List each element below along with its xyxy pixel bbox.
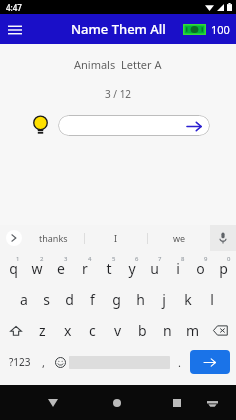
staticText: 9	[204, 255, 208, 263]
staticText: d	[65, 290, 74, 309]
staticText: 6	[135, 255, 139, 263]
button[interactable]: Coins	[183, 22, 230, 37]
button[interactable]: e	[49, 253, 73, 284]
button[interactable]: Home	[104, 390, 130, 416]
button[interactable]: j	[152, 284, 176, 315]
button[interactable]: k	[176, 284, 200, 315]
button[interactable]: n	[155, 315, 180, 346]
staticText: 0	[227, 255, 231, 263]
staticText: 1	[16, 255, 20, 263]
button[interactable]: d	[58, 284, 81, 315]
staticText: s	[43, 290, 50, 309]
staticText: y	[128, 259, 136, 278]
staticText: k	[184, 290, 192, 309]
button[interactable]: r	[73, 253, 97, 284]
staticText: 2	[40, 255, 44, 263]
button[interactable]: Submit answer	[58, 115, 210, 136]
staticText: Name Them All	[71, 20, 166, 38]
staticText: 8	[181, 255, 185, 263]
staticText: 4	[88, 255, 92, 263]
button[interactable]: y	[120, 253, 143, 284]
button[interactable]: Hint	[28, 113, 52, 137]
staticText: l	[210, 290, 214, 309]
button[interactable]: t	[97, 253, 120, 284]
staticText: i	[176, 259, 180, 278]
button[interactable]: Shift	[1, 315, 30, 346]
button[interactable]: g	[104, 284, 128, 315]
staticText: w	[31, 259, 43, 278]
button[interactable]: Emoji	[51, 347, 69, 377]
button[interactable]: x	[55, 315, 80, 346]
staticText: e	[57, 259, 65, 278]
button[interactable]: z	[30, 315, 55, 346]
button[interactable]: a	[12, 284, 35, 315]
staticText: q	[9, 259, 18, 278]
button[interactable]: h	[128, 284, 152, 315]
staticText: ?123	[9, 355, 31, 369]
button[interactable]: Enter	[190, 350, 230, 374]
staticText: c	[89, 321, 96, 340]
button[interactable]: Voice input	[210, 225, 236, 251]
staticText: g	[112, 290, 121, 309]
button[interactable]: Recent apps	[164, 390, 190, 416]
button[interactable]: c	[80, 315, 105, 346]
staticText: r	[82, 259, 88, 278]
button[interactable]: ,	[35, 347, 51, 377]
staticText: we	[173, 232, 186, 244]
button[interactable]: ?123	[4, 347, 35, 377]
staticText: 3	[64, 255, 68, 263]
button[interactable]: v	[105, 315, 130, 346]
staticText: f	[90, 290, 95, 309]
staticText: b	[138, 321, 147, 340]
staticText: u	[150, 259, 159, 278]
button[interactable]: w	[25, 253, 49, 284]
staticText: n	[163, 321, 172, 340]
button[interactable]: m	[180, 315, 205, 346]
button[interactable]: we	[148, 225, 210, 251]
staticText: j	[162, 290, 166, 309]
button[interactable]: o	[189, 253, 212, 284]
button[interactable]: b	[130, 315, 155, 346]
button[interactable]: I	[85, 225, 147, 251]
button[interactable]: p	[212, 253, 235, 284]
button[interactable]: Submit answer	[186, 118, 202, 134]
staticText: m	[186, 321, 200, 340]
button[interactable]: Back	[40, 390, 66, 416]
button[interactable]: u	[143, 253, 166, 284]
staticText: h	[136, 290, 145, 309]
staticText: z	[39, 321, 46, 340]
staticText: Animals Letter A	[74, 57, 162, 72]
staticText: v	[114, 321, 122, 340]
button[interactable]: Open navigation menu	[0, 14, 30, 44]
staticText: I	[114, 232, 118, 244]
staticText: t	[106, 259, 112, 278]
button[interactable]: thanks	[22, 225, 84, 251]
staticText: ,	[42, 355, 45, 370]
button[interactable]: q	[1, 253, 25, 284]
button[interactable]: .	[170, 347, 188, 377]
staticText: o	[196, 259, 205, 278]
staticText: thanks	[39, 232, 68, 244]
button[interactable]: i	[166, 253, 189, 284]
button[interactable]: Expand toolbar	[6, 230, 22, 246]
button[interactable]: Backspace	[205, 315, 235, 346]
staticText: x	[64, 321, 72, 340]
button[interactable]: f	[81, 284, 104, 315]
staticText: 100	[211, 22, 230, 37]
staticText: .	[178, 355, 181, 370]
staticText: 4:47	[6, 2, 22, 13]
button[interactable]: l	[200, 284, 224, 315]
staticText: 5	[112, 255, 116, 263]
other: Coins	[183, 24, 206, 35]
staticText: p	[219, 259, 228, 278]
staticText: 7	[158, 255, 162, 263]
button[interactable]: Switch keyboard	[199, 390, 225, 416]
button[interactable]: s	[35, 284, 58, 315]
staticText: a	[20, 290, 28, 309]
staticText: 3 / 12	[105, 87, 132, 101]
